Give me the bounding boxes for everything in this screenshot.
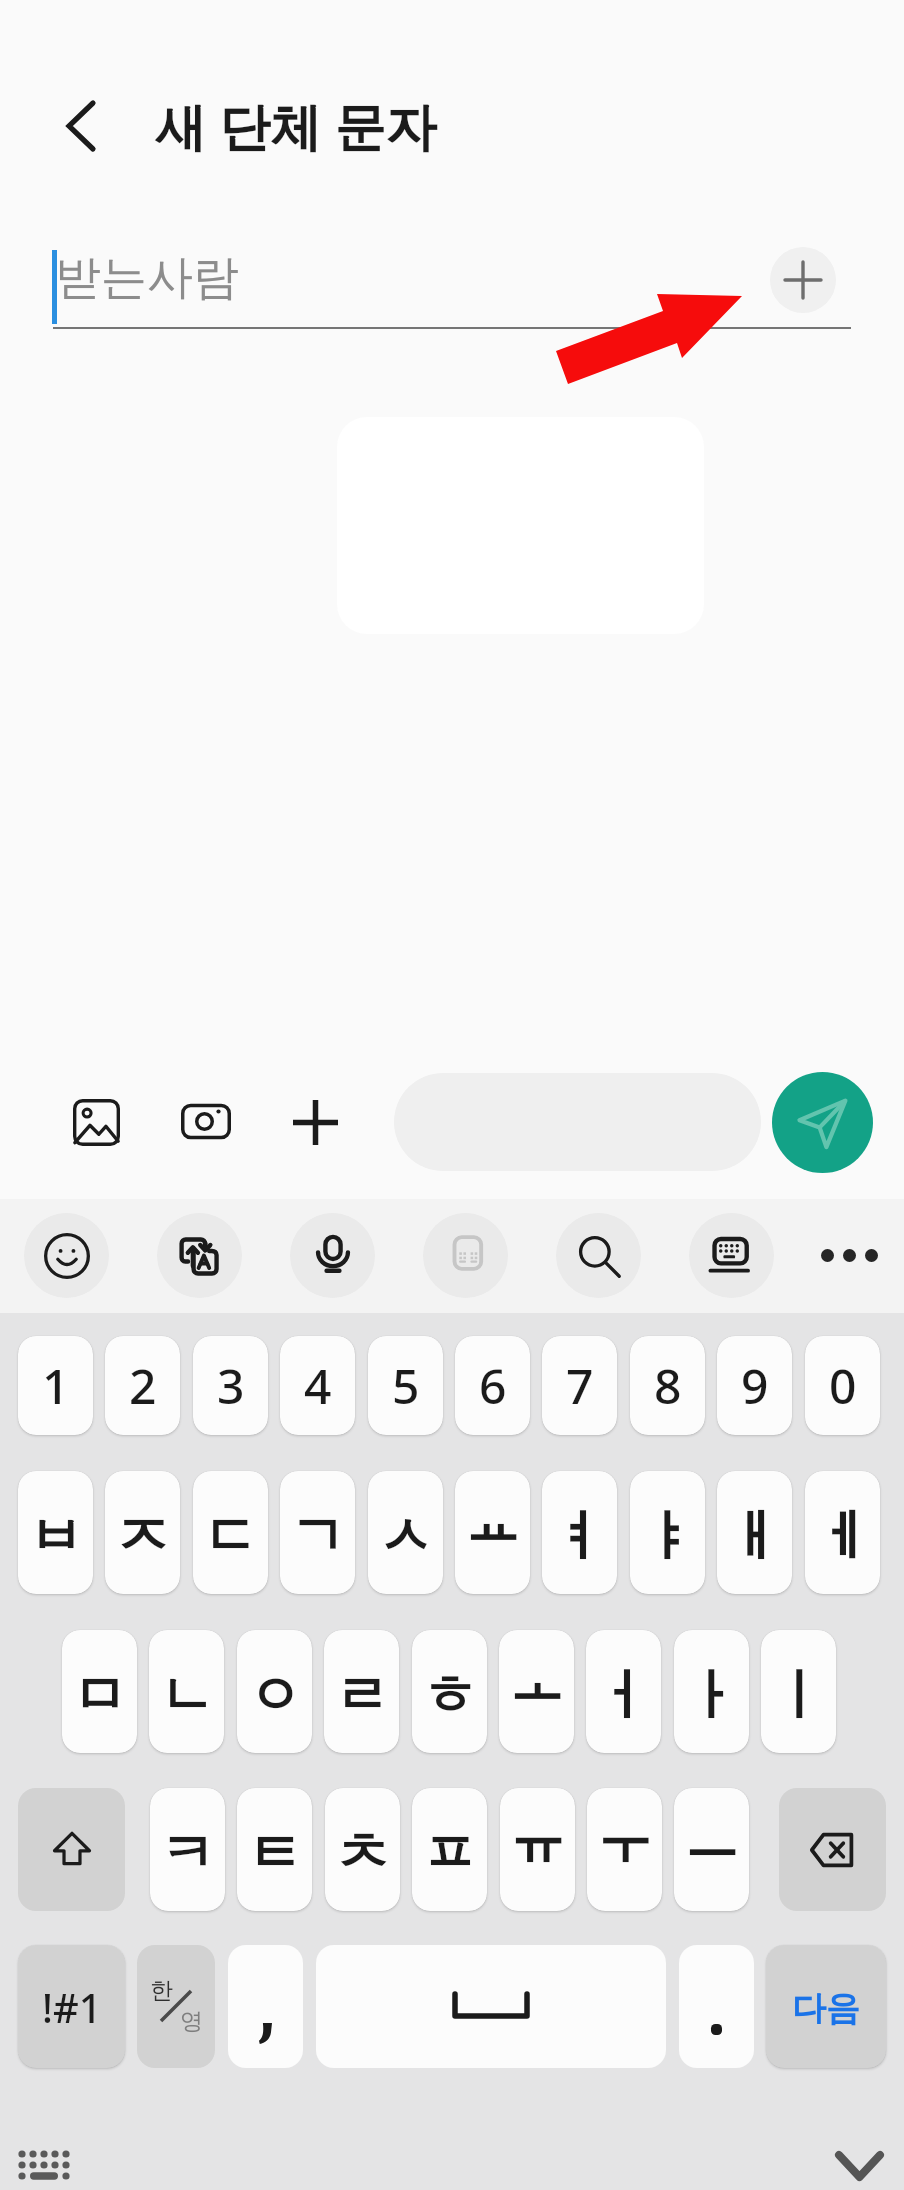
button[interactable]: 6: [455, 1336, 530, 1435]
button[interactable]: ㅓ: [586, 1630, 661, 1753]
staticText: ㅂ: [28, 1502, 83, 1571]
staticText: 2: [129, 1353, 157, 1418]
staticText: ㅍ: [422, 1819, 477, 1888]
staticText: ㅠ: [510, 1805, 565, 1874]
staticText: 다음: [792, 1987, 860, 2030]
button[interactable]: ㅕ: [542, 1471, 617, 1594]
button[interactable]: ㅎ: [412, 1630, 487, 1753]
button[interactable]: Language: [137, 1945, 215, 2068]
staticText: 8: [654, 1353, 682, 1418]
button[interactable]: Period: [679, 1945, 754, 2068]
button[interactable]: More: [812, 1213, 887, 1298]
staticText: ㅈ: [115, 1502, 170, 1571]
button[interactable]: 9: [717, 1336, 792, 1435]
button[interactable]: ㅌ: [237, 1788, 312, 1911]
staticText: !#1: [42, 1980, 102, 2034]
staticText: 영: [180, 2007, 203, 2036]
button[interactable]: 8: [630, 1336, 705, 1435]
button[interactable]: ㄴ: [149, 1630, 224, 1753]
button[interactable]: Keyboard layout: [18, 2148, 70, 2186]
staticText: ㅑ: [640, 1502, 695, 1571]
staticText: 6: [479, 1353, 507, 1418]
button[interactable]: ㄹ: [324, 1630, 399, 1753]
staticText: ㅁ: [72, 1661, 127, 1730]
staticText: ㅇ: [247, 1661, 302, 1730]
staticText: ㄹ: [334, 1661, 389, 1730]
button[interactable]: Emoji: [24, 1213, 109, 1298]
button[interactable]: Backspace: [779, 1788, 886, 1911]
button[interactable]: Comma: [228, 1945, 303, 2068]
button[interactable]: Clipboard: [423, 1213, 508, 1298]
button[interactable]: Send: [772, 1072, 873, 1173]
staticText: 한: [150, 1976, 173, 2005]
button[interactable]: 다음: [766, 1945, 886, 2068]
button[interactable]: Space: [316, 1945, 666, 2068]
button[interactable]: Search: [556, 1213, 641, 1298]
button[interactable]: Camera: [170, 1096, 242, 1148]
button[interactable]: ㅣ: [761, 1630, 836, 1753]
button[interactable]: ㄱ: [280, 1471, 355, 1594]
staticText: ㄱ: [290, 1502, 345, 1571]
staticText: ㅊ: [335, 1819, 390, 1888]
button[interactable]: ㅍ: [412, 1788, 487, 1911]
button[interactable]: ㄷ: [193, 1471, 268, 1594]
button[interactable]: ㅂ: [18, 1471, 93, 1594]
button[interactable]: ㅠ: [500, 1788, 575, 1911]
button[interactable]: Voice input: [290, 1213, 375, 1298]
button[interactable]: Translate: [157, 1213, 242, 1298]
staticText: 7: [566, 1353, 594, 1418]
staticText: ㅐ: [727, 1502, 782, 1571]
staticText: ㅎ: [422, 1661, 477, 1730]
staticText: ㅋ: [160, 1819, 215, 1888]
button[interactable]: Shift: [18, 1788, 125, 1911]
button[interactable]: ㅑ: [630, 1471, 705, 1594]
staticText: ㅜ: [597, 1805, 652, 1874]
button[interactable]: 2: [105, 1336, 180, 1435]
staticText: ㄷ: [203, 1502, 258, 1571]
staticText: 0: [829, 1353, 857, 1418]
button[interactable]: ㅏ: [674, 1630, 749, 1753]
button[interactable]: Add attachment: [279, 1096, 351, 1148]
button[interactable]: Add recipient: [770, 247, 836, 313]
button[interactable]: Gallery: [60, 1096, 132, 1148]
button[interactable]: ㅜ: [587, 1788, 662, 1911]
staticText: ㅔ: [815, 1502, 870, 1571]
staticText: ㄴ: [159, 1661, 214, 1730]
staticText: ㅛ: [465, 1488, 520, 1557]
button[interactable]: Keyboard settings: [689, 1213, 774, 1298]
button[interactable]: ㅗ: [499, 1630, 574, 1753]
button[interactable]: ㅈ: [105, 1471, 180, 1594]
staticText: 4: [304, 1353, 332, 1418]
button[interactable]: ㅛ: [455, 1471, 530, 1594]
staticText: 1: [42, 1353, 70, 1418]
staticText: 9: [741, 1353, 769, 1418]
staticText: ㅗ: [509, 1647, 564, 1716]
staticText: 받는사람: [55, 249, 239, 307]
staticText: ㅌ: [247, 1819, 302, 1888]
button[interactable]: ㅁ: [62, 1630, 137, 1753]
button[interactable]: 4: [280, 1336, 355, 1435]
staticText: ㅕ: [552, 1502, 607, 1571]
button[interactable]: ㅇ: [237, 1630, 312, 1753]
button[interactable]: ㅔ: [805, 1471, 880, 1594]
button[interactable]: ㅅ: [368, 1471, 443, 1594]
staticText: 3: [217, 1353, 245, 1418]
button[interactable]: ㅋ: [150, 1788, 225, 1911]
staticText: 5: [392, 1353, 420, 1418]
staticText: ㅓ: [596, 1661, 651, 1730]
staticText: ㅏ: [684, 1661, 739, 1730]
staticText: ㅣ: [771, 1661, 826, 1730]
button[interactable]: ㅡ: [674, 1788, 749, 1911]
button[interactable]: Hide keyboard: [835, 2148, 884, 2182]
button[interactable]: !#1: [18, 1945, 125, 2068]
button[interactable]: Back: [50, 74, 112, 178]
button[interactable]: 3: [193, 1336, 268, 1435]
button[interactable]: 1: [18, 1336, 93, 1435]
button[interactable]: ㅐ: [717, 1471, 792, 1594]
button[interactable]: 7: [542, 1336, 617, 1435]
staticText: ㅅ: [378, 1502, 433, 1571]
button[interactable]: 5: [368, 1336, 443, 1435]
button[interactable]: 0: [805, 1336, 880, 1435]
button[interactable]: ㅊ: [325, 1788, 400, 1911]
